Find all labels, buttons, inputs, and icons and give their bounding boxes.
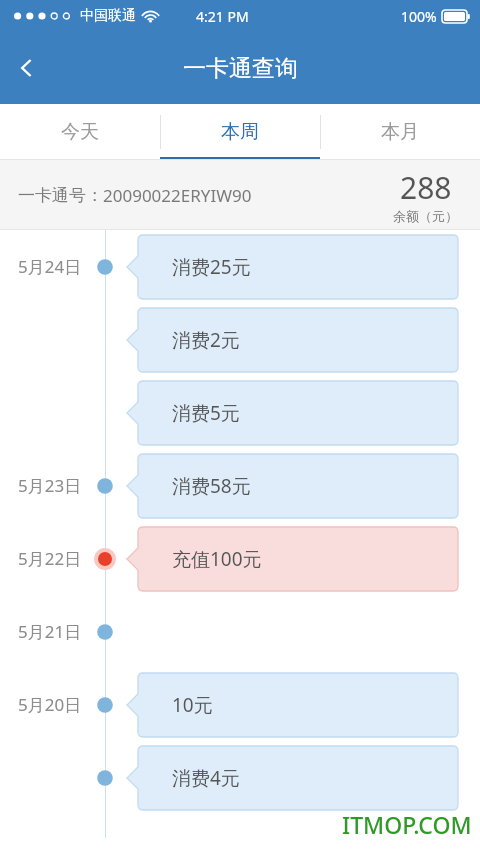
staticText: 本周	[221, 120, 259, 144]
staticText: 消费5元	[172, 400, 240, 426]
staticText: 5月23日	[18, 474, 82, 497]
staticText: 20090022ERYIW90	[103, 184, 252, 207]
staticText: 消费58元	[172, 473, 251, 499]
staticText: 4:21 PM	[196, 7, 249, 26]
staticText: 消费4元	[172, 765, 240, 791]
staticText: 消费2元	[172, 327, 240, 353]
staticText: 一卡通号：	[18, 185, 103, 206]
staticText: 中国联通	[80, 7, 136, 25]
staticText: 5月24日	[18, 255, 82, 278]
staticText: 今天	[61, 120, 99, 144]
button[interactable]: 消费4元	[127, 746, 458, 810]
staticText: 10元	[172, 692, 213, 718]
button[interactable]: 本月	[320, 104, 480, 160]
staticText: 一卡通查询	[183, 54, 298, 83]
button[interactable]: Back	[0, 41, 54, 95]
staticText: 消费25元	[172, 254, 251, 280]
staticText: 288	[400, 167, 452, 208]
staticText: 本月	[381, 120, 419, 144]
staticText: ITMOP.COM	[342, 809, 472, 840]
button[interactable]: 消费2元	[127, 308, 458, 372]
button[interactable]: 10元	[127, 673, 458, 737]
button[interactable]: 充值100元	[127, 527, 458, 591]
button[interactable]: 消费58元	[127, 454, 458, 518]
button[interactable]: 本周	[160, 104, 320, 160]
staticText: 5月22日	[18, 547, 82, 570]
staticText: 5月20日	[18, 693, 82, 716]
staticText: 5月21日	[18, 620, 82, 643]
button[interactable]: 今天	[0, 104, 160, 160]
staticText: 充值100元	[172, 546, 262, 572]
button[interactable]: 消费25元	[127, 235, 458, 299]
staticText: 余额（元）	[393, 208, 458, 224]
button[interactable]: 消费5元	[127, 381, 458, 445]
staticText: 100%	[401, 7, 437, 26]
